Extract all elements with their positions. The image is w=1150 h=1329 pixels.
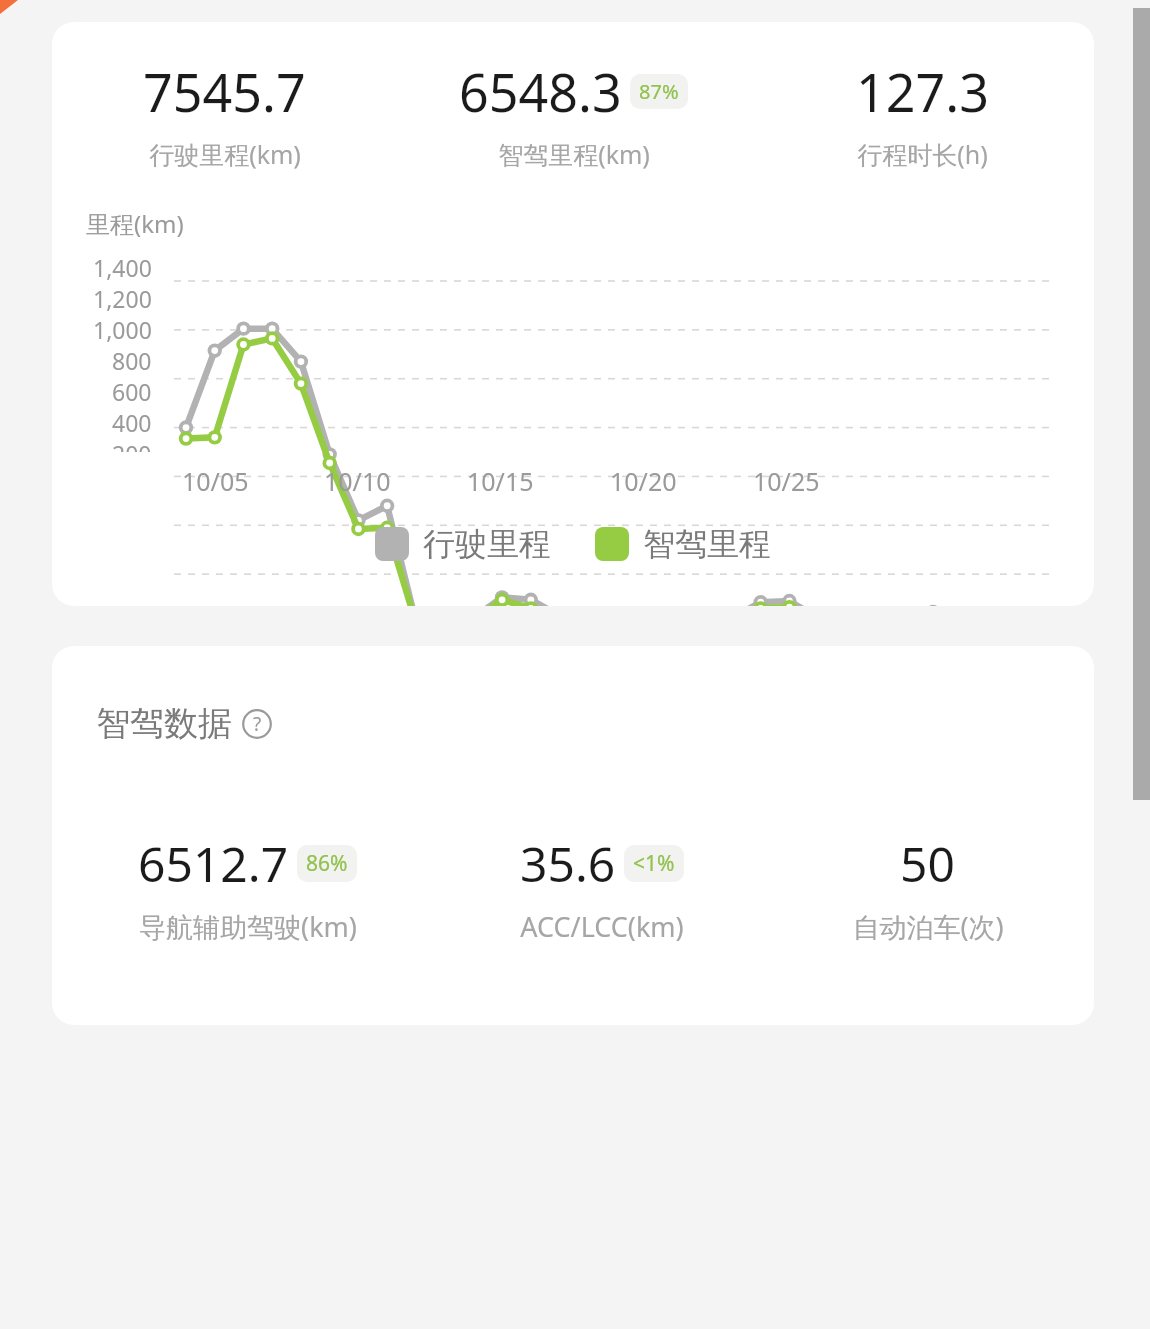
staticText: 行程时长(h) bbox=[857, 137, 988, 171]
staticText: 里程(km) bbox=[86, 207, 184, 240]
staticText: 6548.3 bbox=[459, 56, 622, 127]
staticText: 行驶里程(km) bbox=[149, 137, 301, 171]
staticText: 1,200 bbox=[93, 283, 152, 314]
button[interactable]: 智驾数据 bbox=[96, 702, 272, 745]
staticText: 87% bbox=[639, 78, 679, 105]
staticText: 10/20 bbox=[610, 464, 677, 498]
staticText: 600 bbox=[112, 376, 152, 407]
staticText: 导航辅助驾驶(km) bbox=[139, 908, 357, 945]
staticText: 6512.7 bbox=[138, 831, 289, 896]
staticText: 50 bbox=[900, 831, 955, 896]
staticText: 10/10 bbox=[324, 464, 391, 498]
staticText: 10/25 bbox=[753, 464, 820, 498]
staticText: ACC/LCC(km) bbox=[520, 908, 684, 945]
staticText: 1,400 bbox=[93, 252, 152, 283]
staticText: <1% bbox=[633, 849, 675, 878]
staticText: 800 bbox=[112, 345, 152, 376]
staticText: ? bbox=[253, 711, 262, 737]
staticText: 86% bbox=[306, 849, 348, 878]
staticText: 7545.7 bbox=[143, 56, 306, 127]
staticText: 智驾里程 bbox=[643, 524, 771, 564]
staticText: 400 bbox=[112, 407, 152, 438]
staticText: 行驶里程 bbox=[423, 524, 551, 564]
staticText: 10/05 bbox=[182, 464, 249, 498]
staticText: 127.3 bbox=[856, 56, 989, 127]
staticText: 智驾数据 bbox=[96, 702, 232, 745]
staticText: 200 bbox=[112, 438, 152, 452]
staticText: 智驾里程(km) bbox=[498, 137, 650, 171]
staticText: 35.6 bbox=[520, 831, 616, 896]
staticText: 自动泊车(次) bbox=[852, 908, 1004, 945]
staticText: 10/15 bbox=[467, 464, 534, 498]
other: Help about assisted driving data bbox=[242, 709, 272, 739]
staticText: 1,000 bbox=[93, 314, 152, 345]
